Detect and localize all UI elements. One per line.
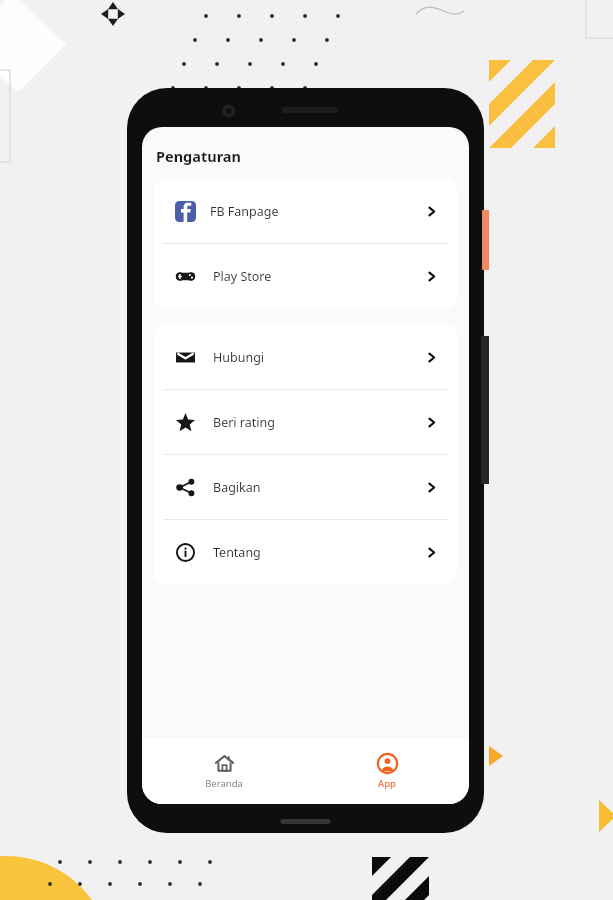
staticText: Hubungi: [213, 349, 265, 366]
other: Open: [424, 204, 439, 219]
other: Open: [424, 269, 439, 284]
button[interactable]: Beri rating: [154, 390, 457, 454]
other: Open: [424, 480, 439, 495]
other: Open: [424, 350, 439, 365]
button[interactable]: Beranda: [142, 738, 305, 804]
button[interactable]: App: [305, 738, 469, 804]
other: Open: [424, 545, 439, 560]
staticText: FB Fanpage: [210, 203, 279, 220]
button[interactable]: Tentang: [154, 520, 457, 584]
staticText: Tentang: [213, 544, 261, 561]
other: Open: [424, 415, 439, 430]
button[interactable]: Hubungi: [154, 325, 457, 389]
staticText: Bagikan: [213, 479, 261, 496]
staticText: Pengaturan: [156, 146, 241, 166]
button[interactable]: FB Fanpage: [154, 179, 457, 243]
staticText: App: [378, 777, 396, 790]
button[interactable]: Play Store: [154, 244, 457, 308]
staticText: Beri rating: [213, 414, 275, 431]
button[interactable]: Bagikan: [154, 455, 457, 519]
staticText: Play Store: [213, 268, 272, 285]
staticText: Beranda: [205, 777, 243, 790]
